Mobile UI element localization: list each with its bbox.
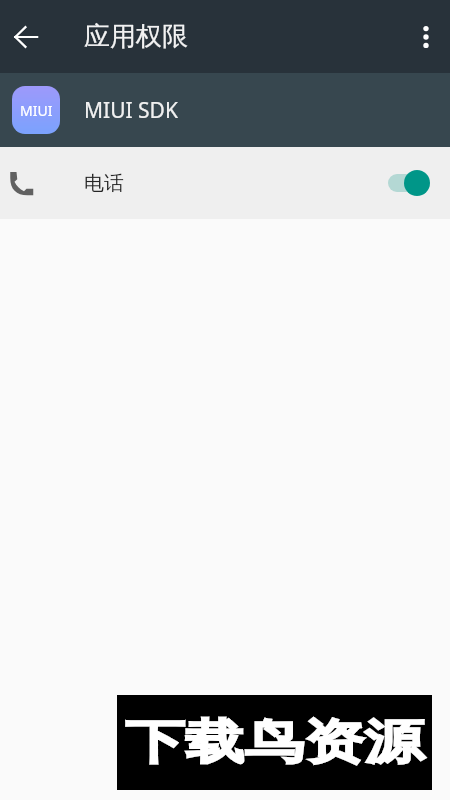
staticText: MIUI [20, 101, 53, 120]
button[interactable]: Toggle phone permission [385, 161, 441, 205]
staticText: MIUI SDK [84, 96, 178, 125]
staticText: 下载鸟资源 [125, 713, 424, 772]
staticText: 电话 [84, 171, 124, 196]
button[interactable]: Back [2, 13, 50, 61]
button[interactable]: 电话 [0, 147, 450, 219]
staticText: 应用权限 [84, 20, 188, 53]
button[interactable]: More options [402, 13, 450, 61]
button[interactable]: MIUI [0, 73, 450, 147]
